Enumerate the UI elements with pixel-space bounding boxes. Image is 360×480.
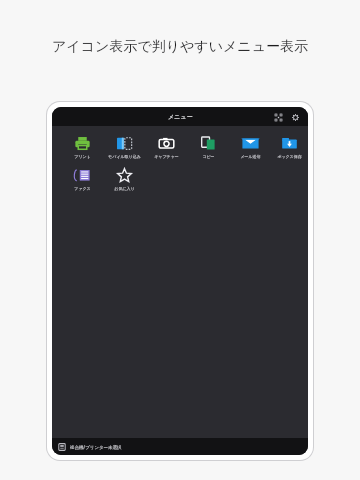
button[interactable]: QR code scan [271,110,285,124]
button[interactable]: ファクス [61,165,103,193]
button[interactable]: 複合機/プリンター未選択 [52,438,308,455]
staticText: アイコン表示で判りやすいメニュー表示 [0,38,360,56]
staticText: ファクス [74,186,91,191]
staticText: ボックス保存 [277,154,302,159]
button[interactable]: モバイル取り込み [103,133,145,161]
staticText: キャプチャー [154,154,179,159]
staticText: モバイル取り込み [108,154,141,159]
button[interactable]: Settings [288,110,302,124]
staticText: プリント [74,154,91,159]
button[interactable]: プリント [61,133,103,161]
button[interactable]: キャプチャー [145,133,187,161]
button[interactable]: ボックス保存 [271,133,308,161]
staticText: 複合機/プリンター未選択 [70,444,122,450]
staticText: メール送信 [240,154,261,159]
button[interactable]: メール送信 [229,133,271,161]
staticText: お気に入り [114,186,135,191]
staticText: メニュー [168,113,193,121]
button[interactable]: お気に入り [103,165,145,193]
staticText: コピー [202,154,215,159]
button[interactable]: コピー [187,133,229,161]
